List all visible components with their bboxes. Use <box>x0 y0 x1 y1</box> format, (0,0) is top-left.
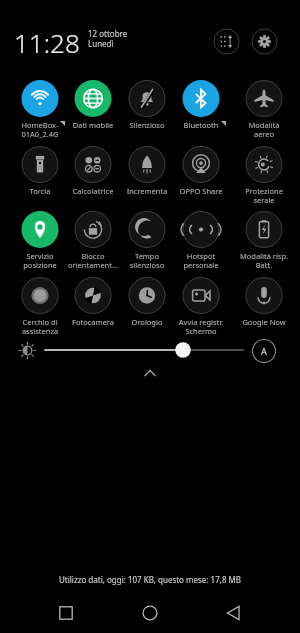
staticText: posizione <box>10 260 70 270</box>
staticText: Google Now <box>234 317 294 327</box>
staticText: Tempo <box>117 251 177 261</box>
staticText: Silenzioso <box>117 120 177 130</box>
button[interactable]: Tempo <box>121 209 173 269</box>
button[interactable]: OPPO Share <box>175 144 227 204</box>
staticText: Modalità risp. <box>234 251 294 261</box>
button[interactable]: Google Now <box>238 275 290 335</box>
button[interactable]: Fotocamera <box>67 275 119 335</box>
staticText: Calcolatrice <box>63 186 123 196</box>
staticText: Fotocamera <box>63 317 123 327</box>
button[interactable]: Modalità <box>238 78 290 138</box>
staticText: personale <box>171 260 231 270</box>
button[interactable]: Indietro <box>220 599 248 627</box>
button[interactable]: Silenzioso <box>121 78 173 138</box>
button[interactable]: Dati mobile <box>67 78 119 138</box>
button[interactable]: Blocco <box>67 209 119 269</box>
staticText: Cerchio di <box>10 317 70 327</box>
button[interactable]: Bluetooth <box>175 78 227 138</box>
staticText: serale <box>234 195 294 205</box>
staticText: Batt. <box>234 260 294 270</box>
staticText: Lunedì <box>88 38 114 49</box>
staticText: OPPO Share <box>171 186 231 196</box>
button[interactable]: Calcolatrice <box>67 144 119 204</box>
staticText: A <box>251 345 277 357</box>
button[interactable]: HomeBox- <box>14 78 66 138</box>
staticText: Bluetooth <box>171 120 231 130</box>
staticText: Hotspot <box>171 251 231 261</box>
button[interactable]: Espandi <box>138 361 162 385</box>
staticText: Servizio <box>10 251 70 261</box>
button[interactable]: Cursore luminosità <box>42 341 247 359</box>
button[interactable]: Luminosità <box>14 337 41 364</box>
button[interactable]: Torcia <box>14 144 66 204</box>
button[interactable]: 11:28 <box>14 25 94 55</box>
button[interactable]: Hotspot <box>175 209 227 269</box>
staticText: Dati mobile <box>63 120 123 130</box>
button[interactable]: Recenti <box>52 599 80 627</box>
staticText: Torcia <box>10 186 70 196</box>
button[interactable]: Modifica <box>213 28 240 55</box>
staticText: Blocco <box>63 251 123 261</box>
staticText: HomeBox- <box>10 120 70 130</box>
staticText: Orologio <box>117 317 177 327</box>
button[interactable]: Incrementa <box>121 144 173 204</box>
staticText: 11:28 <box>14 25 80 55</box>
staticText: Protezione <box>234 186 294 196</box>
button[interactable]: Avvia registr. <box>175 275 227 335</box>
staticText: Avvia registr. <box>171 317 231 327</box>
staticText: Incrementa <box>117 186 177 196</box>
staticText: Utilizzo dati, oggi: 107 KB, questo mese… <box>0 574 300 585</box>
staticText: Schermo <box>171 326 231 336</box>
button[interactable]: Cerchio di <box>14 275 66 335</box>
staticText: orientament... <box>63 260 123 270</box>
staticText: assistenza <box>10 326 70 336</box>
button[interactable]: Servizio <box>14 209 66 269</box>
staticText: aereo <box>234 129 294 139</box>
button[interactable]: Modalità risp. <box>238 209 290 269</box>
staticText: 12 ottobre <box>88 28 128 39</box>
staticText: silenzioso <box>117 260 177 270</box>
button[interactable]: Impostazioni <box>251 28 278 55</box>
button[interactable]: Home <box>136 599 164 627</box>
button[interactable]: Protezione <box>238 144 290 204</box>
staticText: Modalità <box>234 120 294 130</box>
staticText: 01A0_2.4G <box>10 129 70 139</box>
button[interactable]: Orologio <box>121 275 173 335</box>
button[interactable]: Luminosità automatica <box>251 338 277 364</box>
